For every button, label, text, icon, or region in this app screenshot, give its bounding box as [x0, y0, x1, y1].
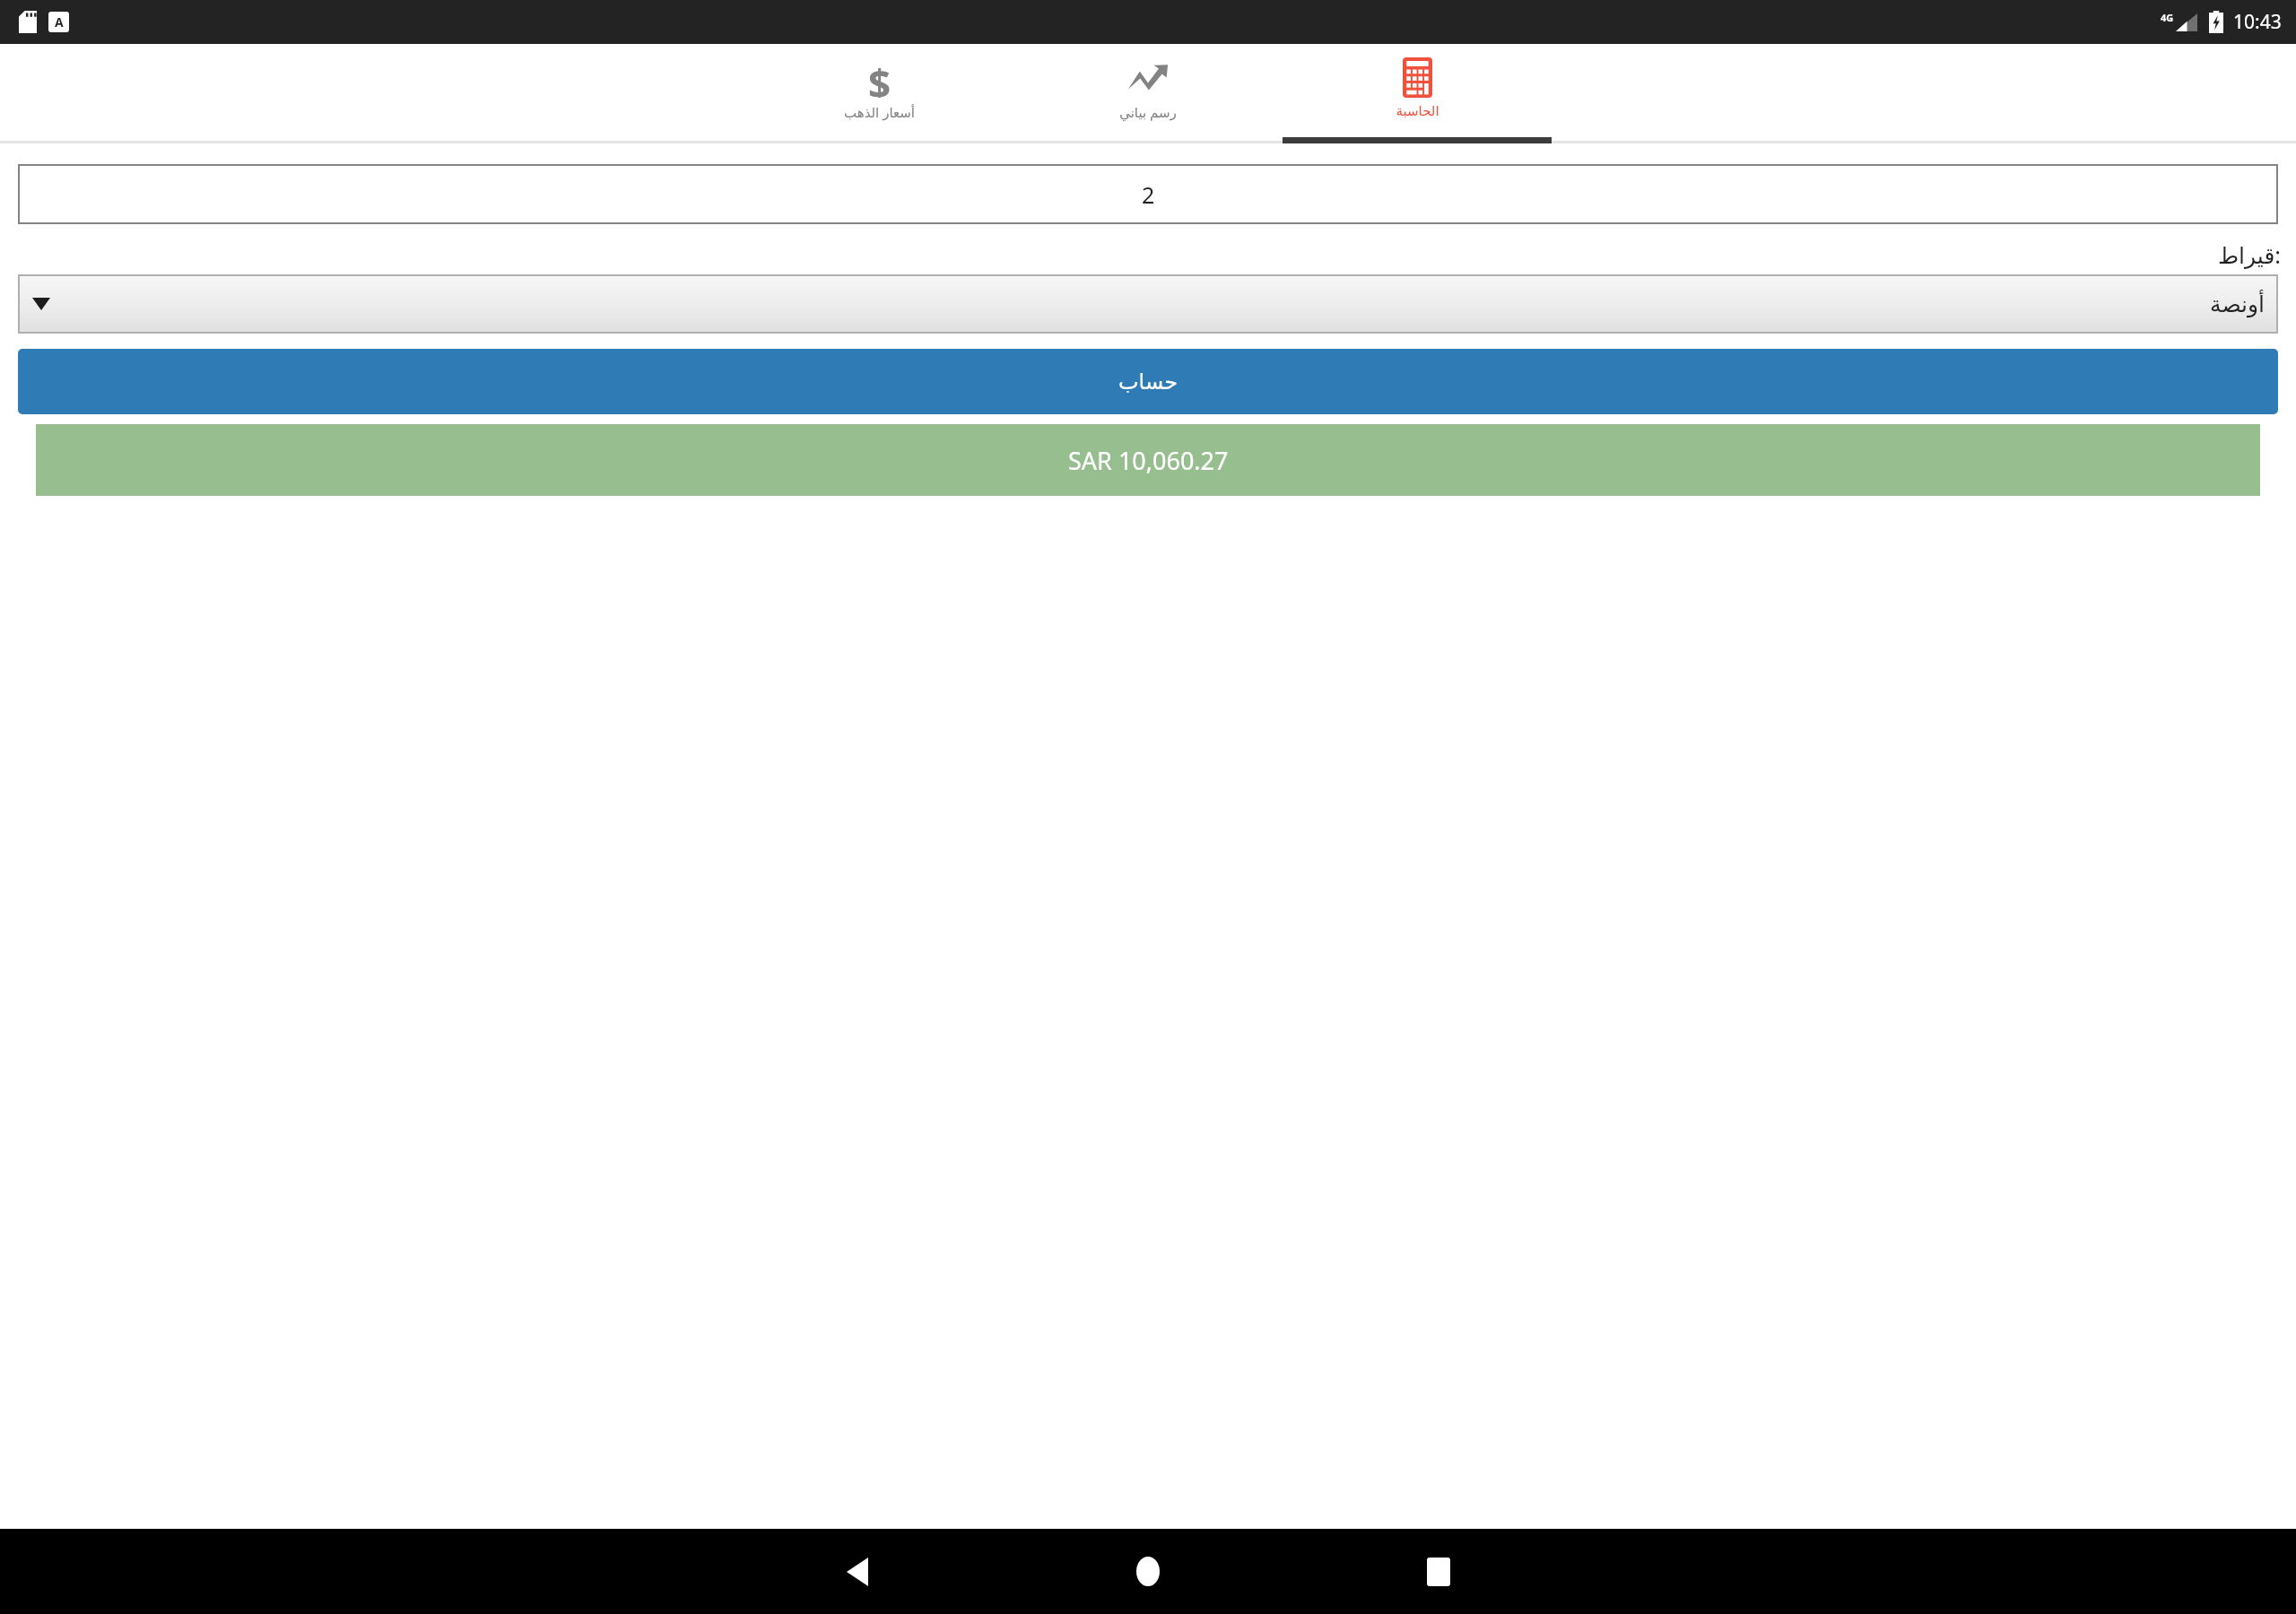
button[interactable]: Back: [712, 1529, 1003, 1614]
button[interactable]: رسم بياني: [1013, 44, 1283, 143]
staticText: حساب: [1118, 369, 1178, 395]
button[interactable]: الحاسبة: [1283, 44, 1552, 143]
button[interactable]: Home: [1003, 1529, 1293, 1614]
staticText: قيراط:: [2218, 239, 2282, 270]
staticText: الحاسبة: [1396, 103, 1439, 118]
button[interactable]: 2: [18, 164, 2278, 224]
staticText: رسم بياني: [1119, 103, 1177, 121]
staticText: أونصة: [2210, 291, 2266, 317]
button[interactable]: حساب: [18, 349, 2278, 414]
staticText: 2: [1142, 179, 1155, 210]
button[interactable]: $: [744, 44, 1013, 143]
button[interactable]: أونصة: [18, 274, 2278, 334]
staticText: $: [868, 56, 891, 98]
staticText: أسعار الذهب: [844, 103, 915, 121]
staticText: SAR 10,060.27: [1068, 444, 1229, 477]
staticText: 4G: [2161, 11, 2174, 24]
staticText: 10:43: [2233, 9, 2282, 35]
button[interactable]: Recent apps: [1293, 1529, 1584, 1614]
staticText: A: [55, 13, 64, 30]
